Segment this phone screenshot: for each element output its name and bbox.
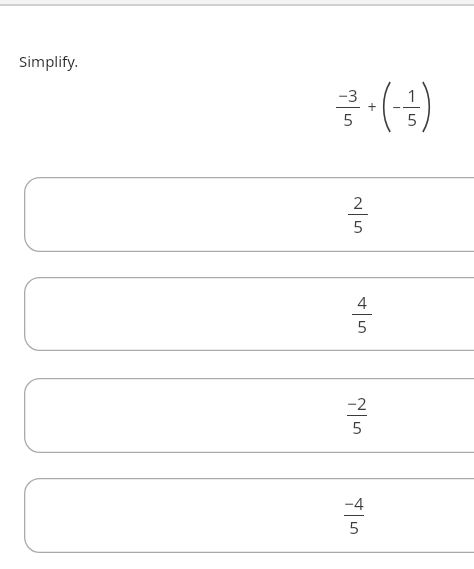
- staticText: +: [367, 96, 377, 118]
- button[interactable]: Answer 4 over 5: [24, 277, 474, 351]
- staticText: 5: [353, 215, 363, 238]
- staticText: Simplify.: [19, 51, 79, 71]
- staticText: 5: [357, 315, 367, 338]
- staticText: −4: [344, 492, 364, 515]
- staticText: −2: [347, 392, 367, 415]
- staticText: −3: [338, 84, 358, 107]
- staticText: 1: [407, 84, 417, 107]
- staticText: 4: [357, 291, 367, 314]
- staticText: 5: [352, 416, 362, 439]
- staticText: 5: [349, 516, 359, 539]
- button[interactable]: Answer −2 over 5: [24, 378, 474, 453]
- button[interactable]: Answer 2 over 5: [24, 177, 474, 252]
- staticText: −: [392, 97, 401, 117]
- staticText: 5: [407, 108, 417, 131]
- staticText: 2: [353, 191, 363, 214]
- button[interactable]: Answer −4 over 5: [24, 478, 474, 553]
- staticText: 5: [343, 108, 353, 131]
